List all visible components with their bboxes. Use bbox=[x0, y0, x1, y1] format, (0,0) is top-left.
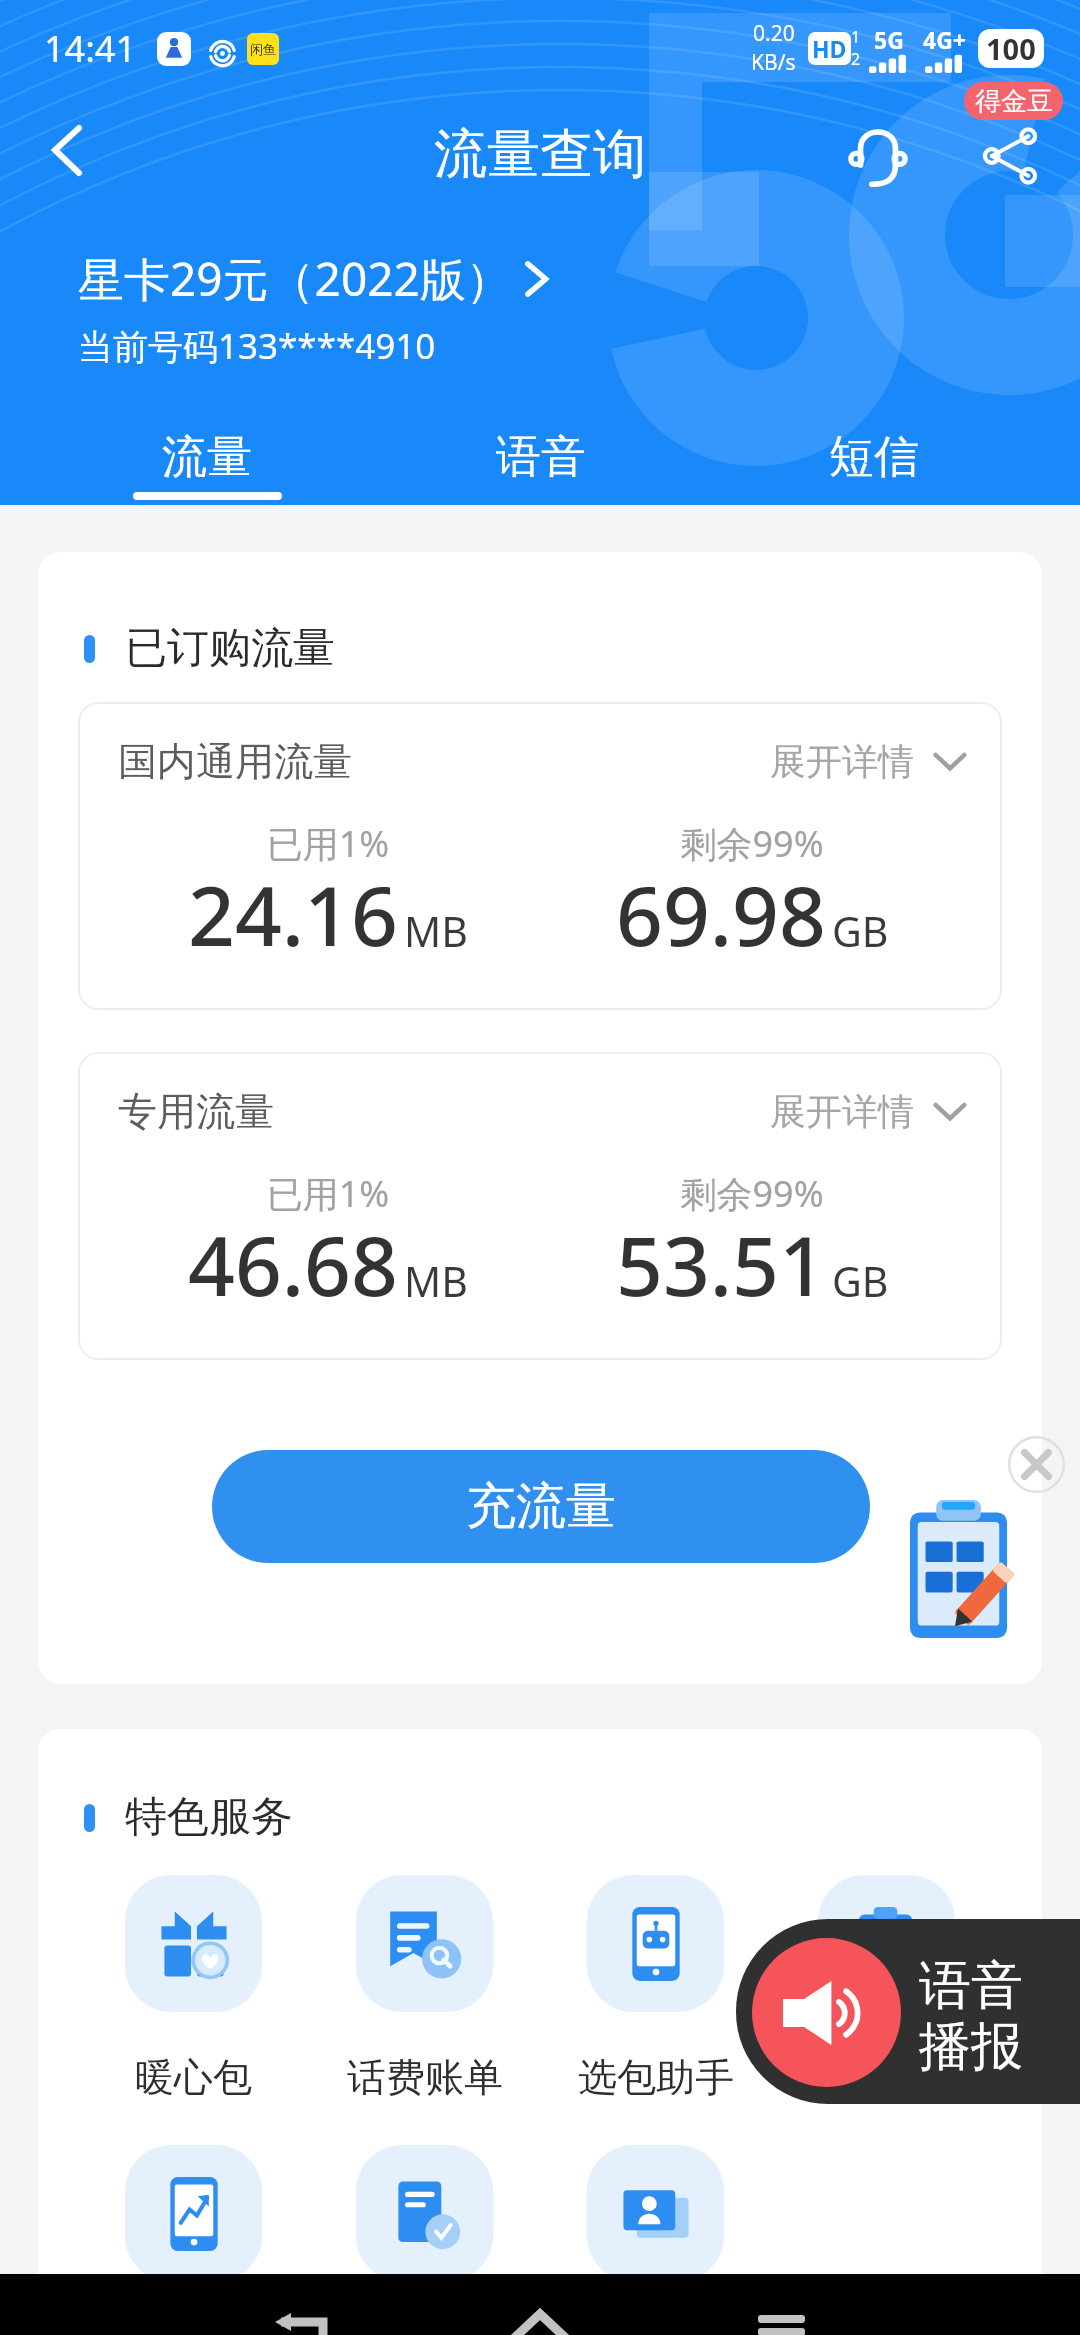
staticText: 流量查询 bbox=[0, 121, 1080, 188]
button[interactable]: 话费账单 bbox=[309, 1875, 540, 2102]
staticText: 得金豆 bbox=[975, 85, 1053, 118]
staticText: 专用流量 bbox=[118, 1087, 274, 1136]
staticText: 短信 bbox=[829, 429, 919, 486]
staticText: 14:41 bbox=[44, 24, 137, 73]
staticText: 充流量 bbox=[466, 1475, 616, 1538]
staticText: 星卡29元（2022版） bbox=[78, 247, 512, 310]
button[interactable]: Feedback bbox=[910, 1500, 1007, 1638]
staticText: 已用1% bbox=[116, 1169, 540, 1218]
staticText: 剩余99% bbox=[540, 819, 964, 868]
button[interactable]: Recent apps bbox=[748, 2274, 828, 2335]
staticText: 闲鱼 bbox=[250, 41, 276, 57]
staticText: 播报 bbox=[919, 2014, 1023, 2080]
button[interactable]: 国内通用流量 bbox=[78, 702, 1002, 1010]
staticText: MB bbox=[404, 1253, 468, 1309]
staticText: 已用1% bbox=[116, 819, 540, 868]
button[interactable]: 选包助手 bbox=[540, 1875, 771, 2102]
staticText: 语音 bbox=[496, 429, 586, 486]
button[interactable]: Close bbox=[1008, 1436, 1065, 1493]
staticText: 4G+ bbox=[923, 24, 966, 55]
button[interactable]: 上网详单 bbox=[771, 1875, 1002, 2102]
staticText: 流量 bbox=[162, 429, 252, 486]
button[interactable] bbox=[78, 2145, 309, 2282]
button[interactable]: 得金豆 bbox=[964, 82, 1063, 120]
staticText: 已订购流量 bbox=[125, 622, 335, 675]
button[interactable]: Share bbox=[972, 118, 1048, 194]
staticText: MB bbox=[404, 903, 468, 959]
staticText: KB/s bbox=[751, 48, 796, 77]
button[interactable]: 暖心包 bbox=[78, 1875, 309, 2102]
staticText: 展开详情 bbox=[770, 1089, 914, 1134]
staticText: 1 bbox=[851, 26, 861, 48]
staticText: 69.98 bbox=[616, 858, 826, 970]
staticText: 46.68 bbox=[188, 1208, 398, 1320]
button[interactable]: Home bbox=[500, 2274, 580, 2335]
button[interactable]: Back bbox=[32, 116, 102, 186]
button[interactable]: 语音 bbox=[736, 1919, 1080, 2104]
button[interactable]: 专用流量 bbox=[78, 1052, 1002, 1360]
button[interactable]: Customer service bbox=[840, 118, 916, 194]
button[interactable]: Back bbox=[265, 2274, 341, 2335]
staticText: 国内通用流量 bbox=[118, 737, 352, 786]
staticText: GB bbox=[832, 1253, 889, 1309]
staticText: 选包助手 bbox=[578, 2053, 734, 2102]
staticText: HD bbox=[812, 33, 847, 64]
staticText: 暖心包 bbox=[135, 2053, 252, 2102]
staticText: 2 bbox=[851, 48, 861, 70]
staticText: 当前号码133****4910 bbox=[78, 322, 436, 370]
staticText: 展开详情 bbox=[770, 739, 914, 784]
staticText: 剩余99% bbox=[540, 1169, 964, 1218]
button[interactable]: 充流量 bbox=[212, 1450, 870, 1563]
staticText: 53.51 bbox=[616, 1208, 826, 1320]
button[interactable] bbox=[309, 2145, 540, 2282]
staticText: GB bbox=[832, 903, 889, 959]
button[interactable]: 短信 bbox=[707, 429, 1040, 492]
staticText: 0.20 bbox=[753, 19, 795, 48]
staticText: 上网详单 bbox=[809, 2053, 965, 2102]
staticText: 5G bbox=[874, 24, 904, 55]
button[interactable] bbox=[540, 2145, 771, 2282]
staticText: 语音 bbox=[919, 1953, 1023, 2019]
button[interactable]: 流量 bbox=[40, 429, 374, 500]
button[interactable]: 语音 bbox=[374, 429, 707, 492]
staticText: 24.16 bbox=[188, 858, 398, 970]
staticText: 话费账单 bbox=[347, 2053, 503, 2102]
staticText: 100 bbox=[986, 29, 1036, 68]
staticText: 特色服务 bbox=[125, 1791, 293, 1844]
